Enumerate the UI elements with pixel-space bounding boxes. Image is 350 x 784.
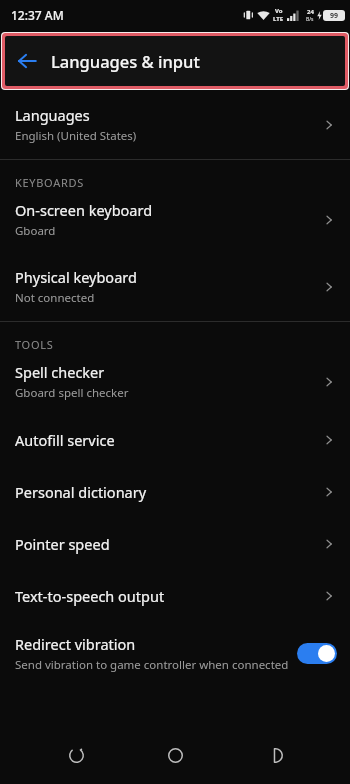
button[interactable]: Recent apps [52, 731, 100, 779]
button[interactable]: Physical keyboard [0, 253, 350, 321]
button[interactable]: Autofill service [0, 414, 350, 466]
staticText: 24 [307, 8, 314, 16]
staticText: Gboard spell checker [15, 385, 129, 401]
button[interactable]: Redirect vibration toggle [297, 643, 337, 664]
staticText: 99 [330, 11, 339, 21]
button[interactable]: Back [251, 731, 299, 779]
staticText: TOOLS [15, 337, 54, 352]
button[interactable]: Home [151, 731, 199, 779]
staticText: Physical keyboard [15, 267, 137, 287]
staticText: B/s [306, 16, 314, 23]
button[interactable]: On-screen keyboard [0, 193, 350, 253]
staticText: Languages & input [51, 50, 200, 72]
button[interactable]: Redirect vibration [0, 622, 350, 685]
staticText: Vo [275, 7, 283, 15]
staticText: Spell checker [15, 362, 105, 382]
staticText: Redirect vibration [15, 634, 136, 654]
staticText: Autofill service [15, 430, 115, 450]
staticText: English (United States) [15, 128, 137, 144]
staticText: Gboard [15, 223, 56, 239]
button[interactable]: Back [0, 32, 350, 90]
staticText: Not connected [15, 290, 95, 306]
button[interactable]: Pointer speed [0, 518, 350, 570]
staticText: 12:37 AM [11, 7, 64, 23]
button[interactable]: Personal dictionary [0, 466, 350, 518]
staticText: Text-to-speech output [15, 586, 165, 606]
button[interactable]: Languages [0, 94, 350, 159]
staticText: On-screen keyboard [15, 200, 153, 220]
button[interactable]: Text-to-speech output [0, 570, 350, 622]
staticText: Languages [15, 105, 90, 125]
staticText: Personal dictionary [15, 482, 147, 502]
staticText: Send vibration to game controller when c… [15, 657, 289, 673]
button[interactable]: Back [7, 41, 47, 81]
staticText: KEYBOARDS [15, 175, 84, 190]
staticText: Pointer speed [15, 534, 110, 554]
staticText: LTE [273, 15, 284, 23]
button[interactable]: Spell checker [0, 355, 350, 414]
